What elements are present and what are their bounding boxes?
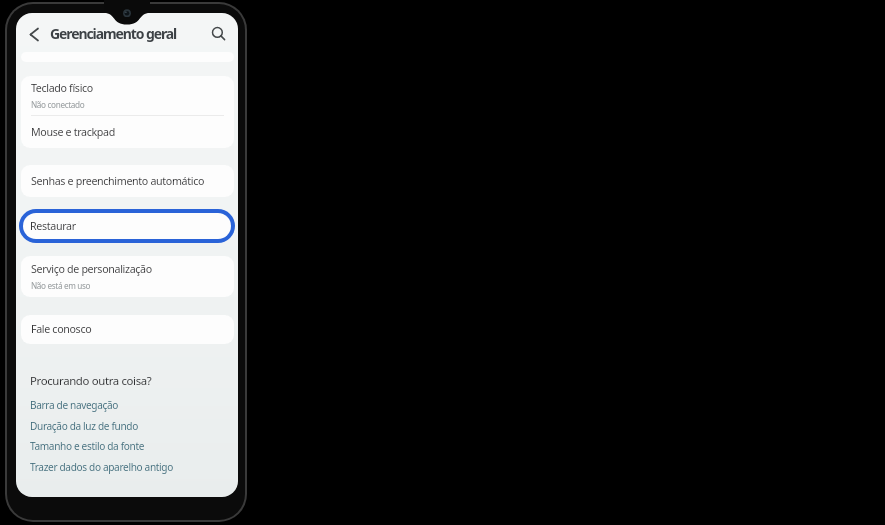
staticText: Fale conosco bbox=[31, 322, 92, 337]
staticText: Não conectado bbox=[31, 99, 85, 110]
button[interactable]: Barra de navegação bbox=[30, 398, 119, 412]
staticText: Não está em uso bbox=[31, 280, 91, 291]
button[interactable] bbox=[208, 24, 230, 44]
staticText: Serviço de personalização bbox=[31, 262, 152, 277]
staticText: Procurando outra coisa? bbox=[30, 373, 152, 387]
button[interactable]: Duração da luz de fundo bbox=[30, 419, 138, 433]
staticText: Duração da luz de fundo bbox=[30, 419, 138, 433]
button[interactable]: Restaurar bbox=[23, 213, 231, 239]
button[interactable]: Procurando outra coisa? bbox=[30, 373, 152, 387]
staticText: Senhas e preenchimento automático bbox=[31, 174, 205, 189]
button[interactable]: Fale conosco bbox=[21, 315, 234, 344]
staticText: Restaurar bbox=[30, 219, 76, 234]
button[interactable]: Senhas e preenchimento automático bbox=[21, 165, 234, 197]
staticText: Barra de navegação bbox=[30, 398, 119, 412]
button[interactable]: Tamanho e estilo da fonte bbox=[30, 439, 145, 453]
button[interactable] bbox=[24, 25, 44, 43]
staticText: Gerenciamento geral bbox=[50, 24, 177, 43]
button[interactable]: Trazer dados do aparelho antigo bbox=[30, 460, 173, 474]
staticText: Trazer dados do aparelho antigo bbox=[30, 460, 173, 474]
button[interactable]: Teclado físico bbox=[21, 76, 234, 115]
button[interactable]: Mouse e trackpad bbox=[21, 116, 234, 148]
staticText: Teclado físico bbox=[31, 81, 93, 96]
button[interactable]: Serviço de personalização bbox=[21, 256, 234, 297]
staticText: Mouse e trackpad bbox=[31, 125, 115, 140]
staticText: Tamanho e estilo da fonte bbox=[30, 439, 145, 453]
